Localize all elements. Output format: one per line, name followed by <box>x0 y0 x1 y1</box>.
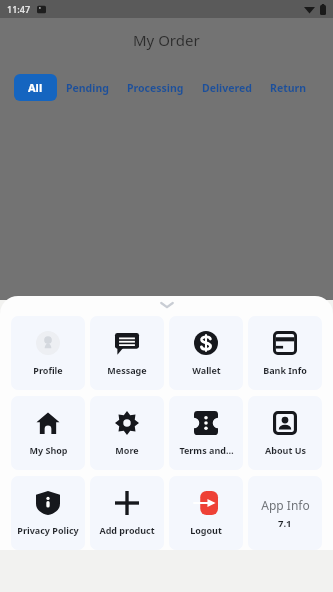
staticText: Profile <box>33 364 63 376</box>
staticText: Message <box>107 364 147 376</box>
staticText: My Order <box>133 30 200 50</box>
button[interactable]: Delivered <box>193 75 261 101</box>
staticText: Privacy Policy <box>17 524 79 536</box>
staticText: Add product <box>99 524 155 536</box>
button[interactable]: Privacy Policy <box>11 476 85 550</box>
staticText: Logout <box>190 524 222 536</box>
button[interactable]: Bank Info <box>248 316 322 390</box>
button[interactable]: My Shop <box>11 396 85 470</box>
staticText: Pending <box>66 81 109 95</box>
staticText: About Us <box>265 444 306 456</box>
staticText: Processing <box>127 81 184 95</box>
staticText: All <box>28 80 43 95</box>
staticText: My Shop <box>29 444 68 456</box>
button[interactable]: Processing <box>118 75 193 101</box>
button[interactable]: Add product <box>90 476 164 550</box>
button[interactable]: Pending <box>57 75 118 101</box>
staticText: Delivered <box>202 81 252 95</box>
button[interactable]: All <box>14 74 57 101</box>
button[interactable]: Message <box>90 316 164 390</box>
staticText: Terms and… <box>179 444 234 456</box>
staticText: More <box>115 444 139 456</box>
staticText: Wallet <box>192 364 221 376</box>
button[interactable]: Logout <box>169 476 243 550</box>
staticText: 11:47 <box>7 3 31 15</box>
button[interactable]: Terms and… <box>169 396 243 470</box>
button[interactable]: About Us <box>248 396 322 470</box>
staticText: Return <box>270 81 307 95</box>
staticText: App Info <box>261 497 310 513</box>
staticText: 7.1 <box>278 517 292 530</box>
button[interactable]: App Info <box>248 476 322 550</box>
button[interactable]: Wallet <box>169 316 243 390</box>
button[interactable]: Return <box>261 75 316 101</box>
button[interactable]: More <box>90 396 164 470</box>
button[interactable]: Profile <box>11 316 85 390</box>
staticText: Bank Info <box>263 364 307 376</box>
